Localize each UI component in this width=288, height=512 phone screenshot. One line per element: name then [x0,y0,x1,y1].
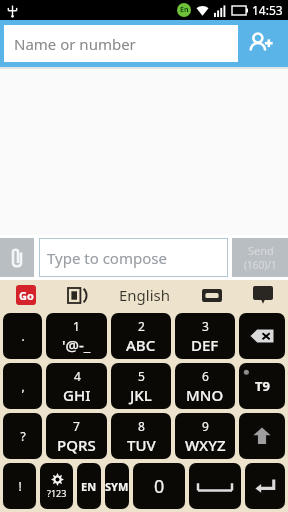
staticText: Type to compose [47,248,167,268]
button[interactable]: Add contact [238,25,284,62]
button[interactable]: English [104,280,186,310]
button[interactable]: Attach [0,238,34,277]
button[interactable]: ! [3,463,36,509]
button[interactable]: 6 [175,363,235,409]
staticText: Send [248,243,274,258]
staticText: '@-_ [62,335,91,355]
staticText: PQRS [57,435,96,455]
button[interactable]: Type to compose [39,238,228,277]
button[interactable]: Emoji [237,280,288,310]
staticText: 6 [202,368,209,384]
button[interactable]: Keyboard layout [52,280,104,310]
button[interactable]: , [3,363,42,409]
staticText: T9 [255,377,270,395]
button[interactable]: ? [3,413,42,459]
staticText: 1 [73,318,80,334]
staticText: 9 [202,418,209,434]
staticText: GHI [63,385,91,405]
staticText: TUV [127,435,156,455]
staticText: 2 [138,318,145,334]
button[interactable]: Enter [245,463,285,509]
staticText: 0 [154,474,165,499]
staticText: English [119,285,171,305]
button[interactable]: 0 [133,463,185,509]
staticText: DEF [191,335,219,355]
button[interactable]: 3 [175,313,235,359]
button[interactable]: 2 [111,313,171,359]
staticText: MNO [186,385,224,405]
button[interactable]: EN [77,463,101,509]
button[interactable]: T9 mode [239,363,285,409]
staticText: 4 [74,368,81,384]
button[interactable]: 7 [46,413,107,459]
button[interactable]: 8 [111,413,171,459]
staticText: ABC [126,335,156,355]
staticText: WXYZ [185,435,226,455]
button[interactable]: Shift [239,413,285,459]
button[interactable]: 4 [46,363,107,409]
button[interactable]: Settings and symbols [40,463,73,509]
button[interactable]: Voice input [186,280,237,310]
button[interactable]: Backspace [239,313,285,359]
button[interactable]: Space [189,463,241,509]
button[interactable]: SYM [105,463,129,509]
staticText: Name or number [14,34,136,54]
staticText: ! [18,478,22,494]
staticText: Go [19,288,34,303]
button[interactable]: Go keyboard logo [0,280,52,310]
staticText: 3 [202,318,209,334]
staticText: 7 [73,418,80,434]
staticText: En [180,5,189,15]
staticText: SYM [105,479,129,494]
button[interactable]: . [3,313,42,359]
staticText: , [21,378,25,394]
staticText: ? [20,428,26,444]
button[interactable]: Send [232,238,288,277]
button[interactable]: 5 [111,363,171,409]
staticText: (160)/1 [244,258,277,272]
staticText: . [21,328,25,344]
staticText: 5 [138,368,145,384]
button[interactable]: 9 [175,413,235,459]
staticText: 14:53 [252,2,283,18]
staticText: EN [81,479,97,494]
button[interactable]: 1 [46,313,107,359]
staticText: ?123 [47,487,67,499]
staticText: JKL [130,385,152,405]
staticText: 8 [138,418,145,434]
button[interactable]: Name or number [4,25,238,62]
